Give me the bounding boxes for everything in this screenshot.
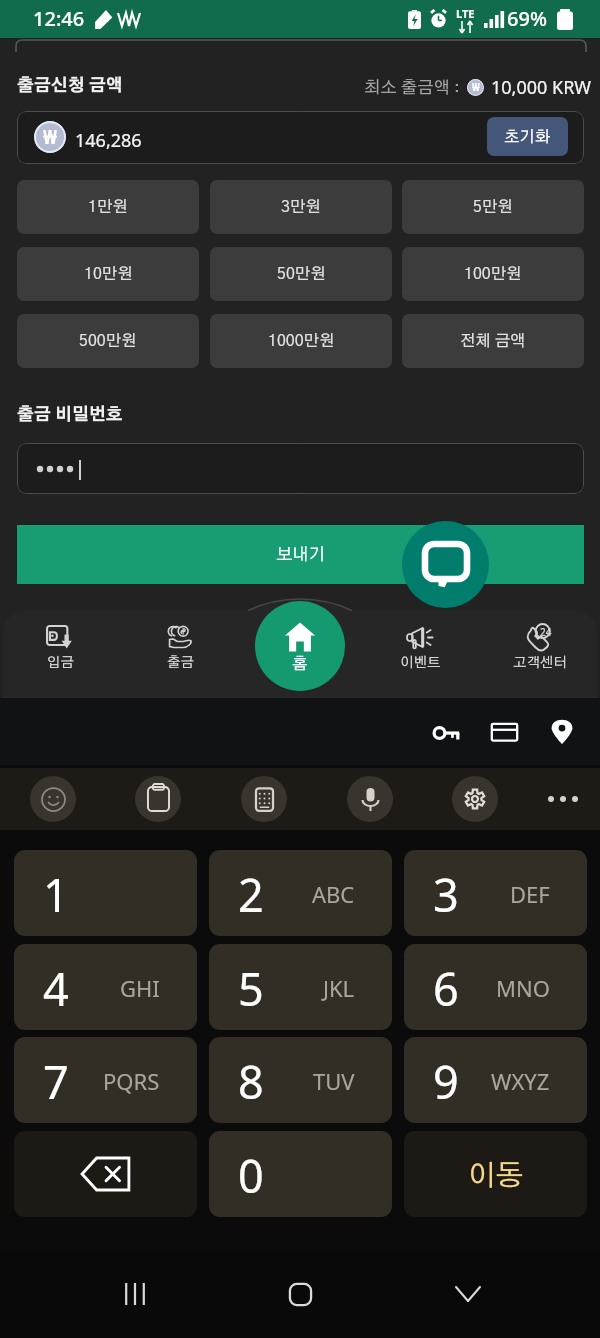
staticText: 50만원 [277, 266, 326, 282]
button[interactable]: 비밀번호 [424, 710, 468, 754]
button[interactable]: 500만원 [17, 314, 199, 368]
staticText: 1만원 [88, 199, 128, 215]
button[interactable]: 7 [14, 1037, 197, 1123]
button[interactable]: 100만원 [402, 247, 584, 301]
staticText: 500만원 [79, 333, 137, 349]
staticText: JKL [323, 973, 355, 1003]
staticText: LTE [456, 6, 475, 21]
staticText: 이동 [468, 1162, 524, 1191]
staticText: ₩ [472, 80, 480, 94]
button[interactable]: 24 [480, 611, 600, 698]
button[interactable]: 초기화 [487, 117, 568, 156]
staticText: 5만원 [473, 199, 513, 215]
staticText: 1000만원 [268, 333, 335, 349]
staticText: GHI [120, 973, 160, 1003]
button[interactable]: 50만원 [210, 247, 392, 301]
staticText: 146,286 [75, 128, 142, 153]
staticText: 출금 비밀번호 [17, 406, 123, 423]
button[interactable]: 1 [14, 850, 197, 936]
staticText: 홈 [292, 656, 308, 672]
staticText: 9 [433, 1051, 459, 1112]
button[interactable]: 4 [14, 944, 197, 1030]
button[interactable]: 3만원 [210, 180, 392, 234]
staticText: PQRS [103, 1066, 160, 1096]
staticText: 10만원 [84, 266, 133, 282]
button[interactable]: 홈 [255, 601, 345, 691]
staticText: 3만원 [281, 199, 321, 215]
button[interactable]: 홈 [255, 1270, 345, 1318]
button[interactable]: 카드 [482, 710, 526, 754]
staticText: DEF [510, 879, 550, 909]
button[interactable]: 입금 [0, 611, 120, 698]
staticText: ABC [312, 879, 355, 909]
button[interactable]: 8 [209, 1037, 392, 1123]
staticText: ₩ [43, 123, 58, 149]
staticText: MNO [496, 973, 550, 1003]
staticText: 고객센터 [513, 656, 567, 670]
button[interactable]: 6 [404, 944, 587, 1030]
button[interactable]: 음성 입력 [347, 776, 393, 822]
staticText: 69% [507, 5, 547, 32]
button[interactable]: 출금 [120, 611, 240, 698]
button[interactable]: 0 [209, 1131, 392, 1217]
button[interactable]: 더보기 [541, 777, 585, 821]
staticText: TUV [313, 1066, 355, 1096]
staticText: 전체 금액 [460, 333, 526, 349]
staticText: 24 [540, 625, 552, 639]
staticText: 입금 [47, 656, 74, 670]
button[interactable]: 키보드 닫기 [423, 1270, 513, 1318]
button[interactable]: 이모티콘 [30, 776, 76, 822]
button[interactable]: 보내기 [17, 525, 584, 584]
button[interactable]: 지우기 [14, 1131, 197, 1217]
staticText: 7 [43, 1051, 69, 1112]
staticText: 보내기 [276, 546, 326, 563]
button[interactable]: 전체 금액 [402, 314, 584, 368]
button[interactable]: 이벤트 [360, 611, 480, 698]
button[interactable]: 이동 [404, 1131, 587, 1217]
staticText: 8 [238, 1051, 264, 1112]
button[interactable]: 최근 앱 [90, 1270, 180, 1318]
staticText: 2 [238, 864, 264, 925]
button[interactable]: 1000만원 [210, 314, 392, 368]
staticText: 100만원 [464, 266, 522, 282]
button[interactable]: 10만원 [17, 247, 199, 301]
button[interactable]: 9 [404, 1037, 587, 1123]
button[interactable]: 3 [404, 850, 587, 936]
staticText: 4 [43, 958, 69, 1019]
button[interactable]: 키보드 모드 [241, 776, 287, 822]
staticText: 0 [238, 1145, 264, 1206]
button[interactable]: 상담 채팅 [402, 521, 489, 608]
staticText: 6 [433, 958, 459, 1019]
button[interactable]: 설정 [452, 776, 498, 822]
button[interactable]: 클립보드 [135, 776, 181, 822]
staticText: 최소 출금액 : [364, 79, 460, 96]
staticText: 3 [433, 864, 459, 925]
staticText: 초기화 [504, 129, 551, 145]
button[interactable]: 1만원 [17, 180, 199, 234]
staticText: 10,000 KRW [491, 75, 592, 100]
button[interactable]: 5 [209, 944, 392, 1030]
staticText: 12:46 [33, 5, 85, 32]
button[interactable]: 5만원 [402, 180, 584, 234]
staticText: 1 [43, 864, 69, 925]
staticText: WXYZ [491, 1066, 550, 1096]
staticText: 이벤트 [400, 656, 441, 670]
button[interactable]: 2 [209, 850, 392, 936]
staticText: 출금 [167, 656, 194, 670]
button[interactable]: 주소 [540, 710, 584, 754]
staticText: 5 [238, 958, 264, 1019]
staticText: 출금신청 금액 [17, 77, 123, 94]
